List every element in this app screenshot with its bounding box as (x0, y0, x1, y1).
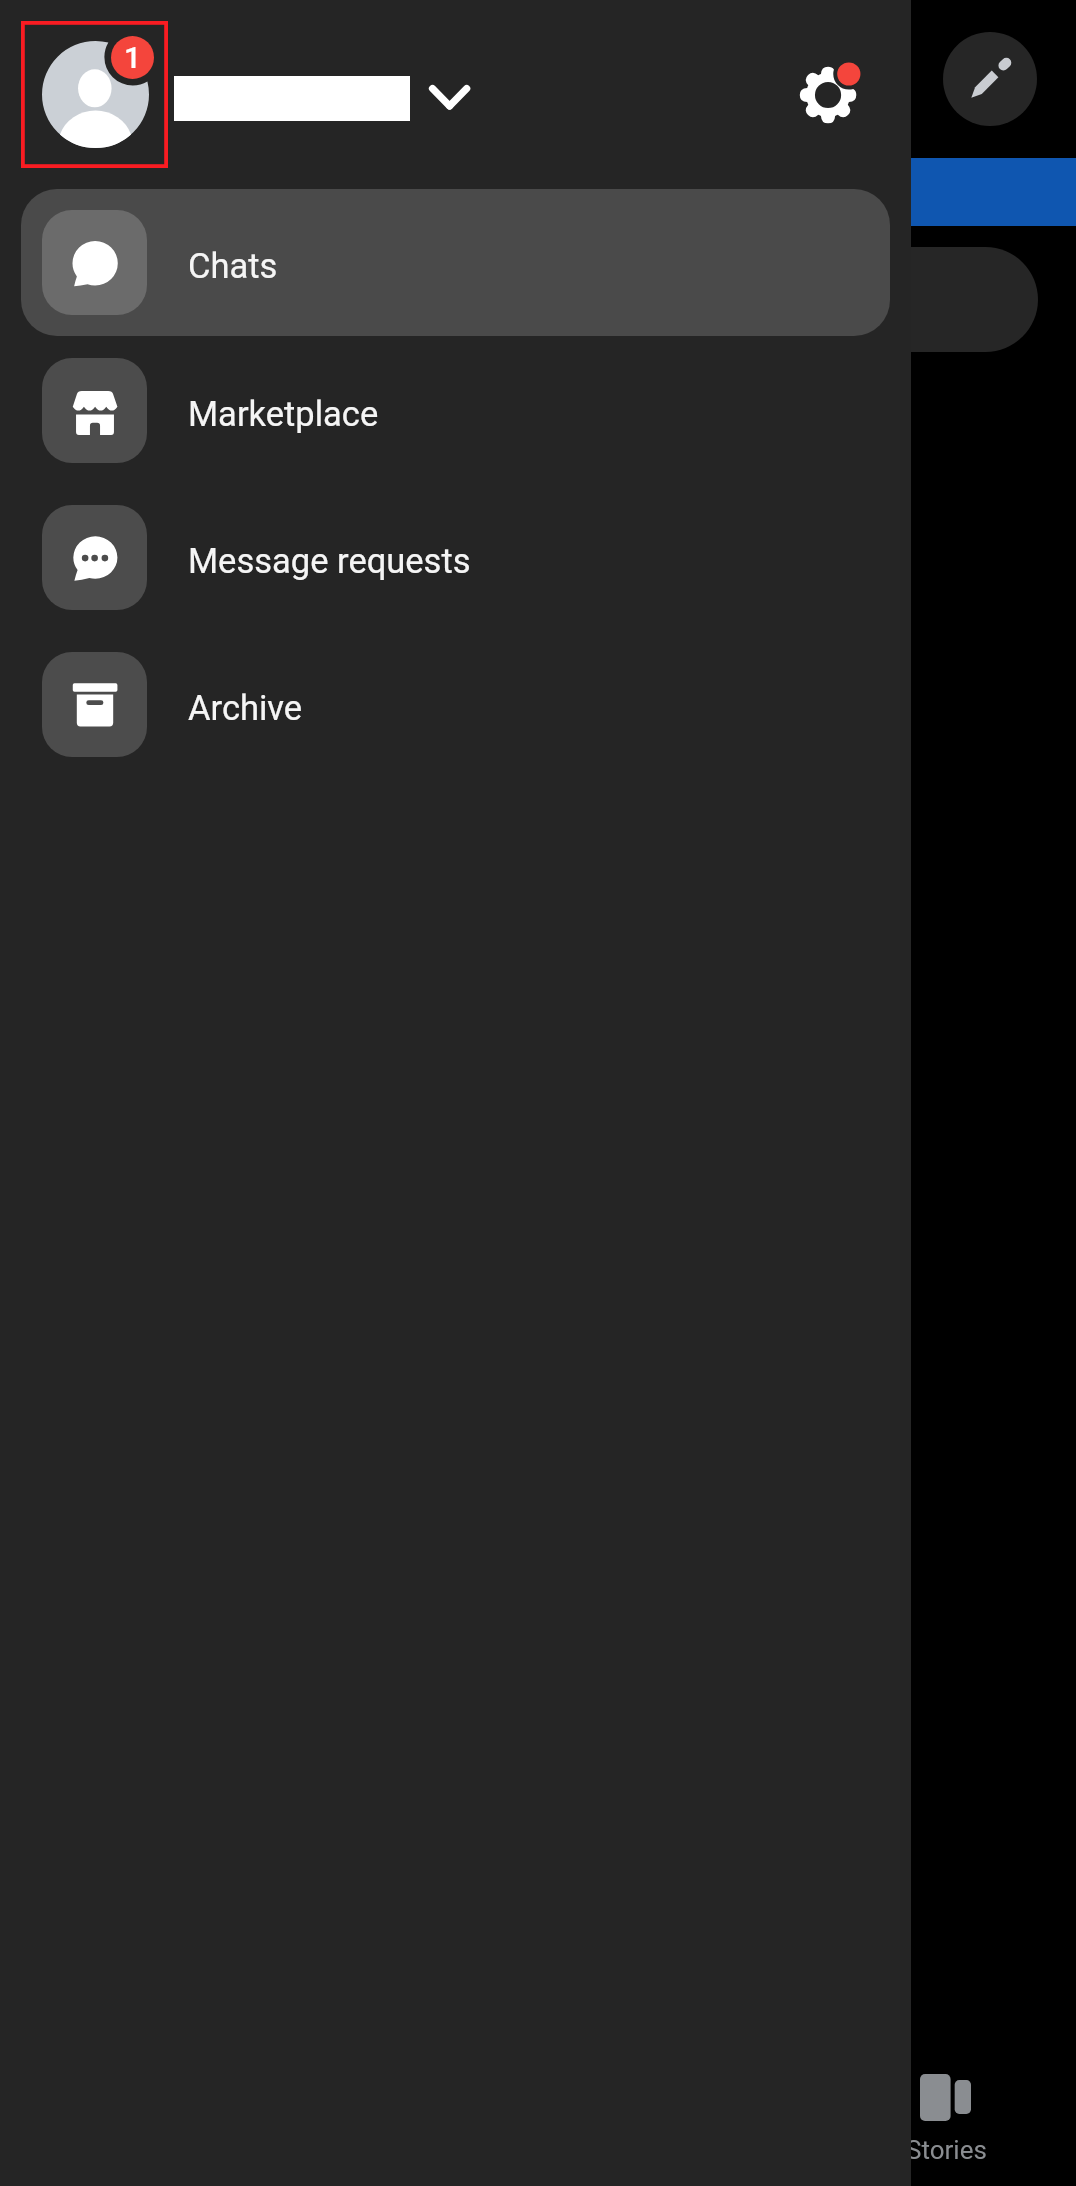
staticText: Archive (188, 688, 303, 728)
button[interactable]: Stories (866, 2042, 1076, 2186)
button[interactable]: Profile (21, 21, 168, 168)
staticText: Marketplace (188, 394, 379, 434)
button[interactable]: Marketplace (21, 337, 890, 484)
button[interactable]: Chats (21, 189, 890, 336)
staticText: Stories (906, 2135, 987, 2165)
staticText: 1 (124, 40, 142, 75)
button[interactable]: Archive (21, 631, 890, 778)
button[interactable]: Message requests (21, 484, 890, 631)
button[interactable]: Settings (795, 60, 865, 130)
button[interactable]: New message (943, 32, 1037, 126)
button[interactable]: Switch account (410, 66, 490, 128)
staticText: Chats (188, 246, 278, 286)
staticText: Message requests (188, 541, 471, 581)
